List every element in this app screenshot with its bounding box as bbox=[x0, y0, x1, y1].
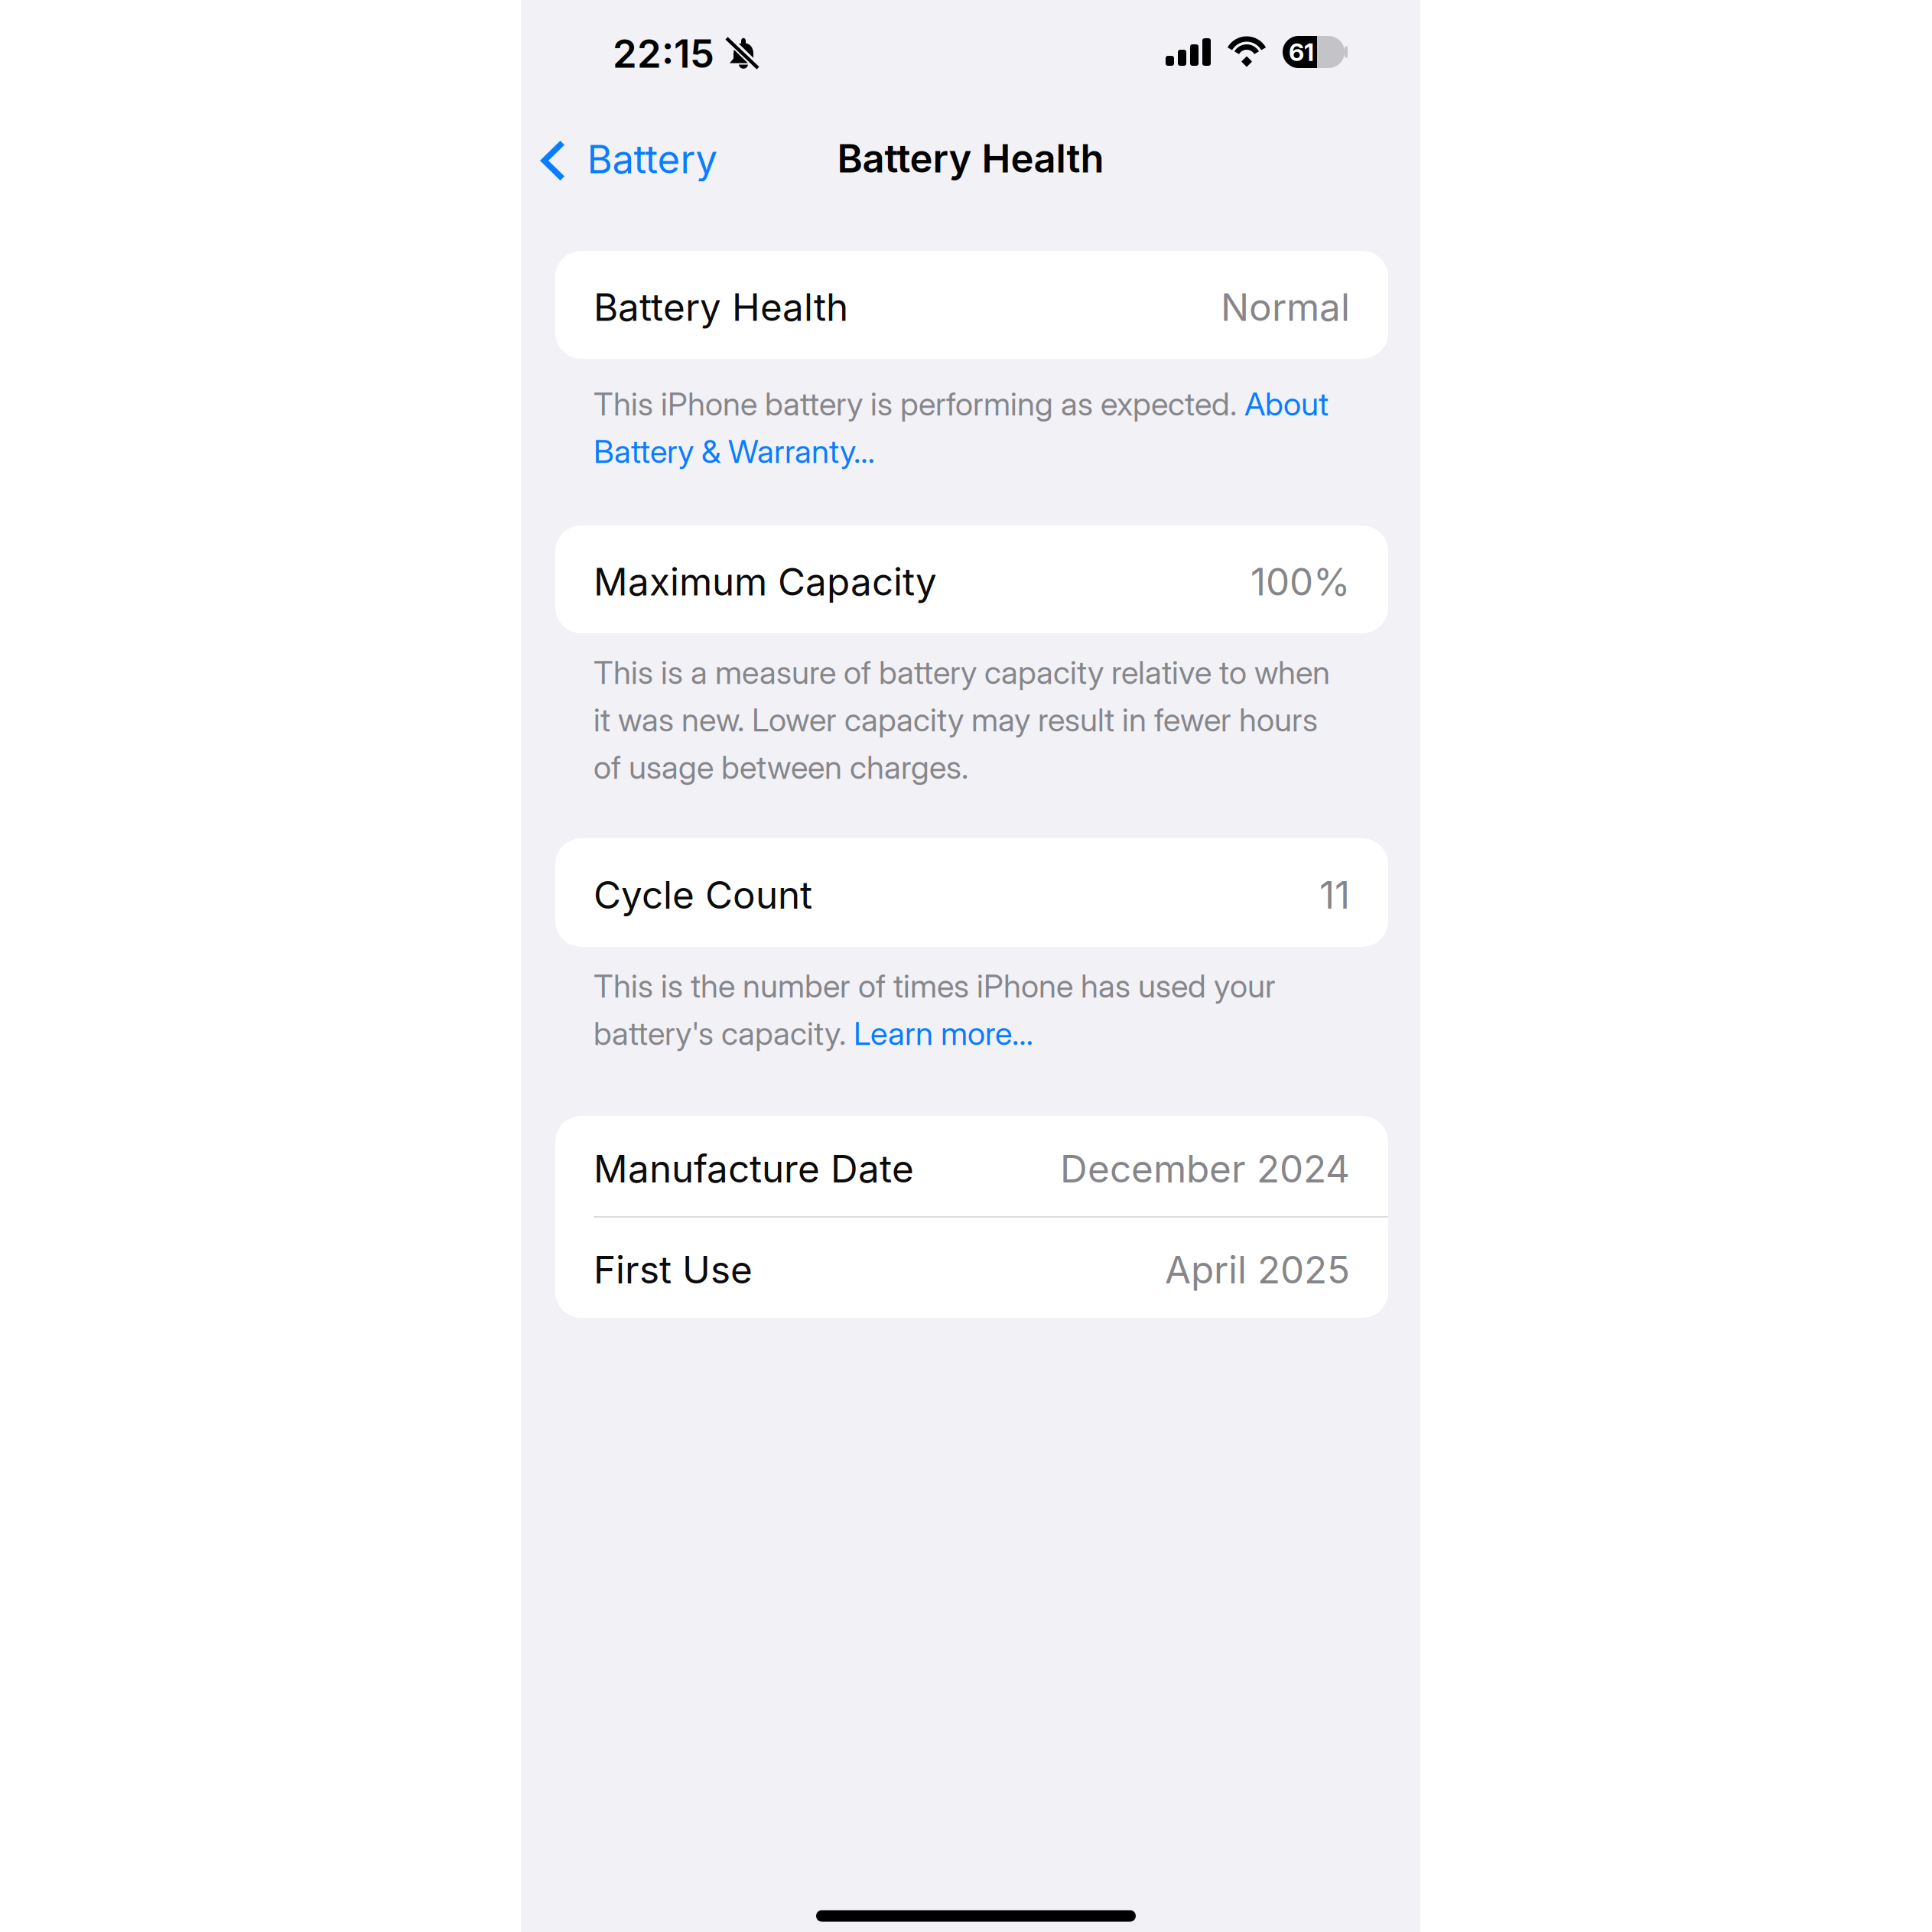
staticText: of usage between charges. bbox=[594, 748, 968, 786]
button[interactable]: Cycle Count bbox=[555, 838, 1388, 947]
staticText: Battery & Warranty… bbox=[594, 432, 875, 471]
button[interactable]: Battery bbox=[517, 120, 735, 198]
staticText: This iPhone battery is performing as exp… bbox=[594, 385, 1244, 423]
staticText: Battery bbox=[587, 136, 717, 182]
staticText: About bbox=[1244, 385, 1329, 423]
staticText: Maximum Capacity bbox=[594, 559, 937, 605]
button[interactable]: About bbox=[1244, 385, 1329, 423]
staticText: April 2025 bbox=[1165, 1247, 1350, 1293]
staticText: it was new. Lower capacity may result in… bbox=[594, 700, 1318, 739]
staticText: 100% bbox=[1251, 559, 1350, 605]
staticText: 61 bbox=[1289, 37, 1314, 67]
staticText: Learn more… bbox=[854, 1014, 1033, 1053]
staticText: battery's capacity. bbox=[594, 1014, 854, 1053]
staticText: Battery Health bbox=[837, 135, 1104, 182]
staticText: This is a measure of battery capacity re… bbox=[594, 653, 1330, 692]
button[interactable]: Manufacture Date bbox=[555, 1116, 1388, 1217]
staticText: 11 bbox=[1319, 872, 1350, 918]
button[interactable]: First Use bbox=[555, 1217, 1388, 1318]
button[interactable]: Battery Health bbox=[555, 251, 1388, 359]
button[interactable]: Learn more… bbox=[854, 1014, 1033, 1053]
staticText: December 2024 bbox=[1060, 1146, 1350, 1192]
staticText: First Use bbox=[594, 1247, 753, 1293]
button[interactable]: Maximum Capacity bbox=[555, 525, 1388, 633]
staticText: Manufacture Date bbox=[594, 1146, 914, 1192]
staticText: 22:15 bbox=[613, 30, 714, 77]
staticText: Normal bbox=[1221, 284, 1350, 330]
staticText: This is the number of times iPhone has u… bbox=[594, 967, 1276, 1005]
staticText: Cycle Count bbox=[594, 872, 812, 918]
staticText: Battery Health bbox=[594, 284, 848, 330]
